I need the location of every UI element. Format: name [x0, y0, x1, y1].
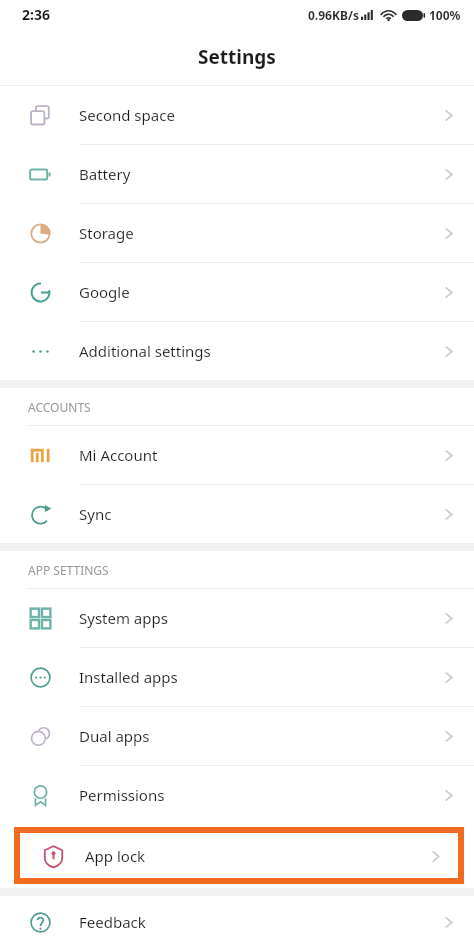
button[interactable]: Mi Account [0, 426, 474, 485]
staticText: System apps [79, 608, 168, 628]
staticText: Installed apps [79, 667, 178, 687]
button[interactable]: Battery [0, 145, 474, 204]
button[interactable]: Sync [0, 485, 474, 543]
staticText: Dual apps [79, 726, 150, 746]
staticText: 100% [429, 7, 461, 23]
other: Mi Account [30, 445, 51, 466]
button[interactable]: App lock [20, 833, 458, 878]
staticText: Sync [79, 504, 112, 524]
staticText: 2:36 [22, 5, 50, 24]
other: Installed apps [29, 666, 52, 689]
other: System apps [30, 608, 51, 629]
button[interactable]: Additional settings [0, 322, 474, 380]
button[interactable]: System apps [0, 589, 474, 648]
staticText: Mi Account [79, 445, 158, 465]
button[interactable]: Feedback [0, 896, 474, 948]
staticText: Feedback [79, 912, 146, 932]
staticText: App lock [85, 846, 146, 866]
other: Battery [29, 163, 52, 186]
other: Google [29, 281, 52, 304]
button[interactable]: Installed apps [0, 648, 474, 707]
other: Sync [29, 503, 52, 526]
other: App lock [42, 845, 65, 868]
staticText: Second space [79, 105, 175, 125]
staticText: 0.96KB/s [308, 7, 359, 23]
other: Storage [29, 222, 52, 245]
staticText: ACCOUNTS [28, 399, 91, 415]
staticText: Additional settings [79, 341, 211, 361]
other: Dual apps [29, 725, 52, 748]
staticText: APP SETTINGS [28, 562, 109, 578]
button[interactable]: Second space [0, 86, 474, 145]
other: Additional settings [29, 340, 52, 363]
button[interactable]: Permissions [0, 766, 474, 824]
other: Second space [29, 104, 52, 127]
button[interactable]: Dual apps [0, 707, 474, 766]
staticText: Google [79, 282, 130, 302]
staticText: Storage [79, 223, 134, 243]
other: Feedback [29, 911, 52, 934]
button[interactable]: Google [0, 263, 474, 322]
staticText: Settings [198, 44, 276, 70]
staticText: Permissions [79, 785, 165, 805]
other: Permissions [29, 784, 52, 807]
staticText: Battery [79, 164, 131, 184]
button[interactable]: Storage [0, 204, 474, 263]
